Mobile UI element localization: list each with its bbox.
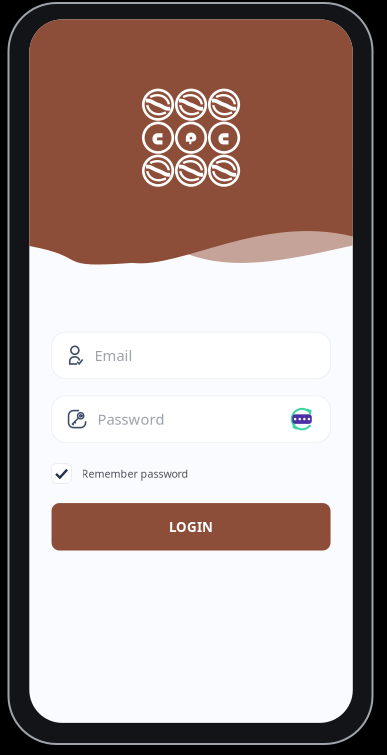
staticText: Remember password <box>82 466 189 481</box>
staticText: Email <box>95 346 133 365</box>
button[interactable]: Remember password <box>52 461 331 485</box>
staticText: LOGIN <box>169 518 213 536</box>
button[interactable]: Email <box>52 332 331 379</box>
button[interactable]: LOGIN <box>52 503 331 550</box>
button[interactable]: Password <box>52 396 331 442</box>
staticText: Password <box>98 409 165 429</box>
